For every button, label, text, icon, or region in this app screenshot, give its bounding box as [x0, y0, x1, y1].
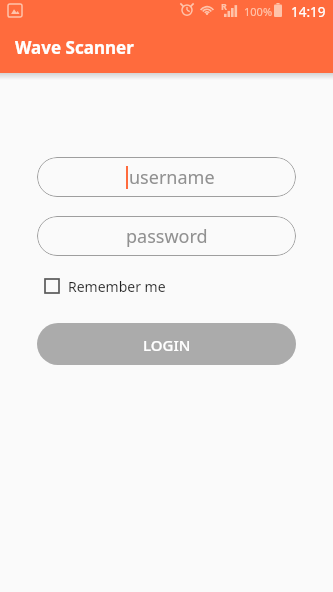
staticText: 14:19: [291, 3, 326, 21]
button[interactable]: LOGIN: [37, 323, 296, 365]
staticText: 100%: [244, 4, 273, 19]
staticText: LOGIN: [143, 335, 191, 355]
button[interactable]: password: [37, 216, 296, 256]
button[interactable]: Remember me: [44, 278, 166, 294]
staticText: Remember me: [68, 277, 166, 293]
staticText: R: [221, 0, 227, 12]
other: Gallery notification: [8, 4, 22, 17]
staticText: Wave Scanner: [15, 36, 134, 59]
button[interactable]: username: [37, 157, 296, 197]
staticText: password: [126, 224, 208, 249]
staticText: username: [129, 165, 215, 190]
